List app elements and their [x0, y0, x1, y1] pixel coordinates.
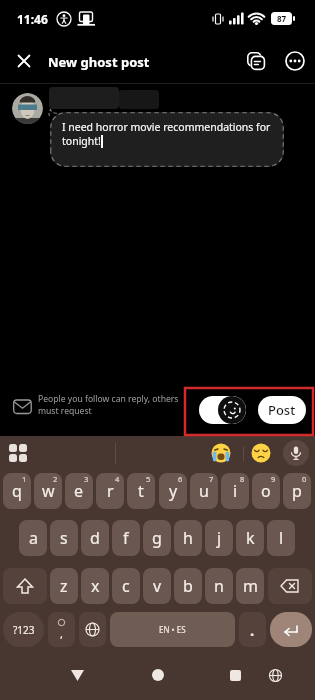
button[interactable] — [270, 612, 312, 647]
staticText: l — [279, 527, 284, 549]
staticText: ?123 — [13, 623, 35, 637]
button[interactable]: t — [127, 473, 155, 509]
button[interactable] — [268, 568, 312, 604]
staticText: w — [42, 480, 55, 502]
button[interactable]: r — [96, 473, 124, 509]
button[interactable]: p — [283, 473, 311, 509]
button[interactable] — [283, 49, 307, 73]
button[interactable]: g — [143, 520, 171, 556]
button[interactable]: u — [190, 473, 218, 509]
staticText: New ghost post — [48, 53, 150, 71]
button[interactable]: q — [3, 473, 31, 509]
button[interactable]: x — [81, 568, 109, 604]
staticText: y — [169, 480, 178, 502]
button[interactable]: EN • ES — [110, 612, 235, 647]
button[interactable]: f — [112, 520, 140, 556]
staticText: o — [261, 480, 271, 502]
staticText: z — [60, 575, 68, 597]
button[interactable]: m — [236, 568, 264, 604]
button[interactable] — [3, 568, 47, 604]
staticText: v — [153, 575, 162, 597]
staticText: . — [250, 620, 255, 640]
staticText: i — [233, 480, 238, 502]
staticText: s — [60, 527, 68, 549]
staticText: d — [90, 527, 100, 549]
staticText: tonight! — [62, 134, 101, 148]
staticText: , — [60, 626, 63, 641]
staticText: n — [214, 575, 224, 597]
button[interactable] — [224, 664, 246, 686]
staticText: f — [123, 527, 129, 549]
button[interactable]: z — [50, 568, 78, 604]
staticText: 0 — [302, 474, 307, 484]
button[interactable]: b — [174, 568, 202, 604]
staticText: b — [183, 575, 193, 597]
button[interactable]: a — [19, 520, 47, 556]
button[interactable] — [66, 664, 88, 686]
staticText: e — [74, 480, 84, 502]
button[interactable] — [6, 441, 30, 465]
staticText: p — [292, 480, 302, 502]
button[interactable] — [283, 440, 309, 466]
button[interactable]: Post — [258, 396, 306, 424]
staticText: g — [152, 527, 162, 549]
staticText: u — [199, 480, 209, 502]
button[interactable]: ?123 — [3, 612, 44, 647]
staticText: 9 — [271, 474, 276, 484]
staticText: k — [246, 527, 255, 549]
button[interactable]: . — [239, 612, 266, 647]
staticText: q — [12, 480, 22, 502]
staticText: c — [122, 575, 130, 597]
button[interactable] — [209, 441, 233, 465]
button[interactable] — [12, 49, 36, 73]
staticText: I need horror movie recommendations for — [62, 120, 271, 134]
button[interactable]: , — [48, 612, 75, 647]
staticText: Post — [268, 401, 296, 419]
button[interactable]: o — [252, 473, 280, 509]
staticText: must request — [38, 405, 92, 417]
button[interactable]: v — [143, 568, 171, 604]
button[interactable]: e — [65, 473, 93, 509]
button[interactable]: c — [112, 568, 140, 604]
staticText: 87 — [277, 13, 287, 24]
staticText: 3 — [84, 474, 89, 484]
button[interactable]: n — [205, 568, 233, 604]
staticText: 5 — [146, 474, 151, 484]
staticText: 2 — [53, 474, 58, 484]
button[interactable]: l — [267, 520, 295, 556]
button[interactable] — [199, 396, 246, 424]
staticText: 7 — [209, 474, 214, 484]
staticText: r — [107, 480, 114, 502]
button[interactable]: k — [236, 520, 264, 556]
button[interactable]: h — [174, 520, 202, 556]
button[interactable]: d — [81, 520, 109, 556]
staticText: j — [217, 527, 222, 549]
button[interactable]: w — [34, 473, 62, 509]
staticText: 8 — [240, 474, 245, 484]
button[interactable] — [264, 664, 286, 686]
button[interactable]: j — [205, 520, 233, 556]
button[interactable] — [79, 612, 106, 647]
staticText: 6 — [178, 474, 183, 484]
button[interactable] — [147, 664, 169, 686]
button[interactable]: y — [159, 473, 187, 509]
button[interactable]: s — [50, 520, 78, 556]
staticText: People you follow can reply, others — [38, 393, 179, 405]
staticText: t — [138, 480, 144, 502]
staticText: a — [29, 527, 38, 549]
staticText: h — [183, 527, 193, 549]
staticText: m — [243, 575, 258, 597]
staticText: EN • ES — [159, 624, 186, 635]
staticText: 4 — [115, 474, 120, 484]
button[interactable] — [244, 49, 268, 73]
button[interactable]: i — [221, 473, 249, 509]
staticText: 11:46 — [17, 11, 48, 27]
staticText: x — [91, 575, 100, 597]
staticText: 1 — [22, 474, 27, 484]
button[interactable] — [249, 441, 273, 465]
